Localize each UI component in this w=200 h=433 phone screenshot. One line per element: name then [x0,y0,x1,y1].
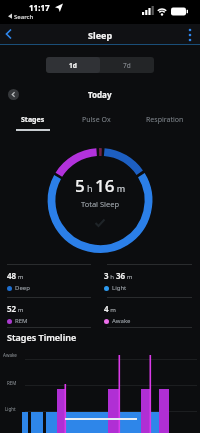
staticText: Stages [21,115,45,125]
staticText: Stages Timeline [7,331,77,343]
staticText: 48 m [7,270,24,281]
button[interactable]: 48 m [7,265,100,292]
button[interactable]: 1d [46,57,100,73]
button[interactable]: Pulse Ox [82,115,111,125]
staticText: Total Sleep [81,199,120,209]
button[interactable]: 52 m [7,298,100,325]
staticText: 52 m [7,303,24,314]
button[interactable]: Stages [16,115,50,131]
staticText: Light [112,284,127,292]
button[interactable] [0,24,20,44]
staticText: REM [7,380,17,386]
staticText: Deep [15,284,30,292]
staticText: 5 h 16 m [75,174,126,197]
staticText: 4 m [104,303,116,314]
staticText: Sleep [88,29,113,41]
button[interactable]: 3 h 36 m [104,265,200,292]
button[interactable]: 7d [100,57,154,73]
staticText: 7d [123,61,131,70]
button[interactable] [8,89,19,100]
button[interactable]: Respiration [146,115,184,125]
staticText: Today [88,89,112,100]
staticText: 3 h 36 m [104,270,133,281]
button[interactable] [180,25,200,45]
staticText: Awake [3,352,17,358]
staticText: Search [14,13,34,21]
button[interactable]: 4 m [104,298,200,325]
staticText: REM [15,317,28,325]
staticText: Awake [112,317,131,325]
staticText: 11:17 [29,2,50,13]
staticText: 1d [69,61,77,70]
staticText: Light [5,406,16,412]
